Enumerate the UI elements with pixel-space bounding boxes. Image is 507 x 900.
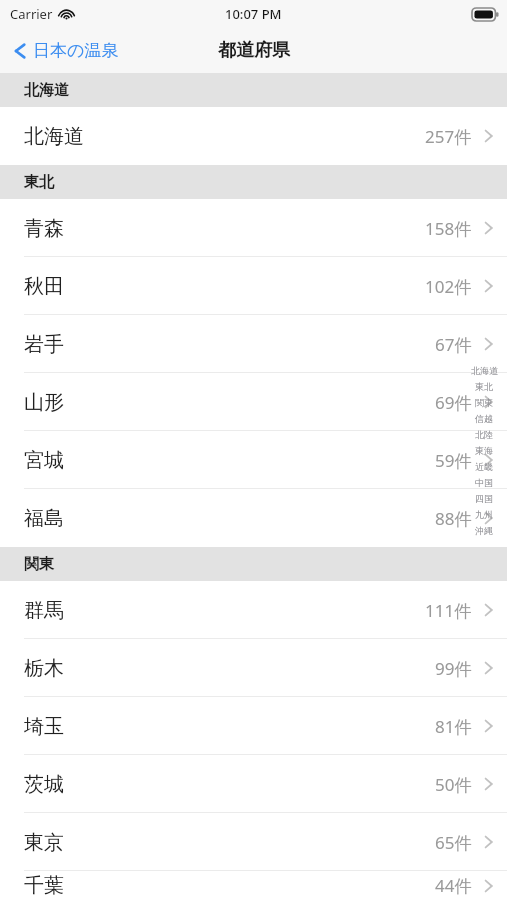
staticText: 中国 [475,477,493,488]
staticText: 10:07 PM [225,5,282,23]
staticText: 東北 [24,173,54,192]
staticText: 関東 [475,397,493,408]
staticText: 宮城 [24,448,64,473]
staticText: 山形 [24,390,64,415]
button[interactable]: 北海道 [0,107,507,165]
button[interactable]: 日本の温泉 [8,36,125,65]
button[interactable]: 北海道 [464,362,504,378]
button[interactable]: 沖縄 [464,522,504,538]
staticText: 69件 [435,391,472,414]
staticText: 81件 [435,715,472,738]
button[interactable]: 四国 [464,490,504,506]
staticText: 59件 [435,449,472,472]
button[interactable]: 九州 [464,506,504,522]
button[interactable]: 東海 [464,442,504,458]
staticText: 北海道 [24,124,84,149]
staticText: 東海 [475,445,493,456]
staticText: 沖縄 [475,525,493,536]
button[interactable]: 中国 [464,474,504,490]
button[interactable]: 青森 [0,199,507,257]
button[interactable]: 福島 [0,489,507,547]
staticText: 岩手 [24,332,64,357]
button[interactable]: 茨城 [0,755,507,813]
button[interactable]: 群馬 [0,581,507,639]
button[interactable]: 千葉 [0,871,507,900]
staticText: 158件 [425,217,472,240]
button[interactable]: 東北 [464,378,504,394]
staticText: 北海道 [471,365,498,376]
button[interactable]: 岩手 [0,315,507,373]
button[interactable]: 宮城 [0,431,507,489]
staticText: 都道府県 [218,39,290,62]
staticText: 67件 [435,333,472,356]
staticText: 88件 [435,507,472,530]
button[interactable]: 信越 [464,410,504,426]
staticText: 信越 [475,413,493,424]
staticText: 四国 [475,493,493,504]
button[interactable]: 埼玉 [0,697,507,755]
button[interactable]: 秋田 [0,257,507,315]
staticText: 青森 [24,216,64,241]
staticText: 茨城 [24,772,64,797]
staticText: 北陸 [475,429,493,440]
button[interactable]: 栃木 [0,639,507,697]
staticText: 257件 [425,125,472,148]
staticText: 44件 [435,874,472,897]
button[interactable]: 東京 [0,813,507,871]
staticText: 埼玉 [24,714,64,739]
staticText: 九州 [475,509,493,520]
staticText: 111件 [425,599,472,622]
button[interactable]: 山形 [0,373,507,431]
staticText: 50件 [435,773,472,796]
staticText: 東京 [24,830,64,855]
staticText: Carrier [10,5,53,23]
staticText: 99件 [435,657,472,680]
staticText: 102件 [425,275,472,298]
staticText: 日本の温泉 [33,40,119,61]
staticText: 栃木 [24,656,64,681]
staticText: 千葉 [24,873,64,898]
staticText: 近畿 [475,461,493,472]
staticText: 北海道 [24,81,69,100]
button[interactable]: 関東 [464,394,504,410]
staticText: 群馬 [24,598,64,623]
button[interactable]: 北陸 [464,426,504,442]
staticText: 福島 [24,506,64,531]
staticText: 関東 [24,555,54,574]
button[interactable]: 近畿 [464,458,504,474]
staticText: 秋田 [24,274,64,299]
staticText: 東北 [475,381,493,392]
staticText: 65件 [435,831,472,854]
